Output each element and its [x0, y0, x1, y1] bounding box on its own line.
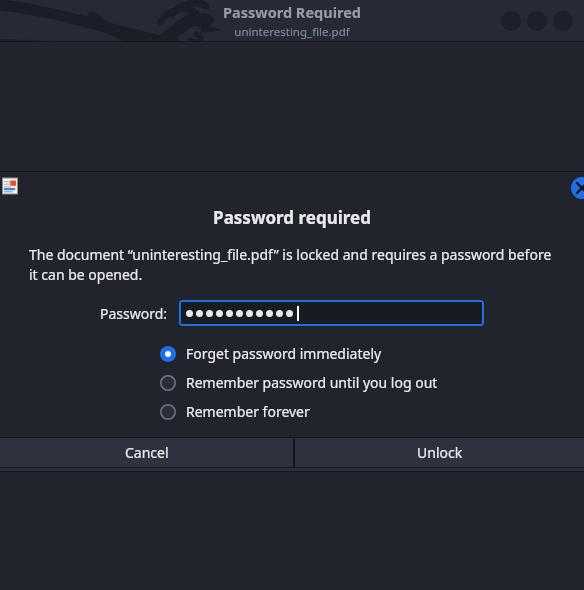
staticText: Forget password immediately: [186, 344, 382, 363]
staticText: Password Required: [223, 2, 361, 22]
staticText: Remember password until you log out: [186, 373, 438, 392]
button[interactable]: Cancel: [0, 438, 293, 467]
button[interactable]: Close dialog: [571, 177, 584, 199]
staticText: Cancel: [125, 443, 169, 462]
staticText: Password:: [100, 304, 168, 323]
button[interactable]: Minimize: [501, 11, 521, 31]
button[interactable]: Remember password until you log out: [0, 368, 584, 397]
button[interactable]: Unlock: [295, 438, 584, 467]
button[interactable]: Forget password immediately: [0, 339, 584, 368]
button[interactable]: Close window: [553, 11, 573, 31]
staticText: Unlock: [417, 443, 463, 462]
button[interactable]: [179, 300, 484, 326]
button[interactable]: Maximize: [527, 11, 547, 31]
staticText: The document “uninteresting_file.pdf” is…: [29, 245, 556, 284]
staticText: uninteresting_file.pdf: [234, 24, 350, 40]
button[interactable]: Remember forever: [0, 397, 584, 426]
staticText: Password required: [0, 206, 584, 229]
staticText: Remember forever: [186, 402, 310, 421]
